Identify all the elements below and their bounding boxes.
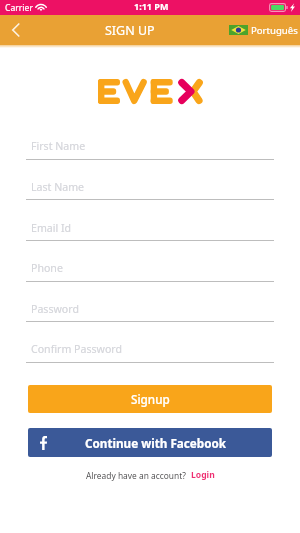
staticText: Confirm Password — [31, 342, 122, 356]
staticText: Password — [31, 302, 79, 316]
button[interactable]: Confirm Password — [26, 337, 274, 362]
button[interactable]: Password — [26, 297, 274, 322]
button[interactable]: Phone — [26, 256, 274, 281]
button[interactable]: First Name — [26, 134, 274, 159]
staticText: First Name — [31, 139, 86, 153]
button[interactable]: Português — [229, 15, 298, 45]
staticText: Signup — [131, 391, 170, 407]
staticText: Last Name — [31, 180, 85, 194]
button[interactable]: Continue with Facebook — [28, 428, 272, 457]
button[interactable]: Login — [191, 469, 215, 481]
button[interactable]: Signup — [28, 385, 272, 413]
staticText: 1:11 PM — [134, 0, 169, 12]
staticText: Carrier — [5, 2, 33, 14]
staticText: Phone — [31, 261, 63, 275]
button[interactable]: Back — [0, 15, 32, 45]
staticText: Continue with Facebook — [85, 435, 227, 451]
staticText: Português — [251, 24, 298, 37]
staticText: Email Id — [31, 221, 72, 235]
staticText: Already have an account? — [86, 470, 191, 481]
button[interactable]: Email Id — [26, 216, 274, 241]
staticText: Login — [191, 469, 215, 481]
button[interactable]: Last Name — [26, 175, 274, 200]
staticText: SIGN UP — [105, 22, 155, 39]
